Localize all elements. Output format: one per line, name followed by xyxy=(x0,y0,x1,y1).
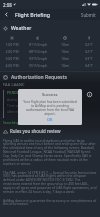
staticText: 10mi xyxy=(52,42,78,47)
staticText: 64°T xyxy=(78,63,100,68)
staticText: Flight Briefing xyxy=(15,11,51,18)
staticText: Flying UAS in and/or round stadiums and … xyxy=(3,138,97,166)
staticText: Authorization Requests xyxy=(11,74,67,81)
staticText: The FAA, under 14 CFR § 99.7 — Special S… xyxy=(3,170,97,194)
staticText: 10mi xyxy=(52,63,78,68)
staticText: 62°T xyxy=(78,42,100,47)
staticText: 1:00 PM xyxy=(0,42,24,47)
staticText: Authorization pending for xyxy=(7,97,48,101)
staticText: Time submitted: 2:08 PM xyxy=(7,103,46,107)
staticText: 63°T xyxy=(78,56,100,61)
button[interactable]: OK xyxy=(44,116,56,122)
staticText: Submit xyxy=(81,12,96,18)
staticText: 88°F/2mph xyxy=(24,49,52,54)
staticText: Success xyxy=(42,92,58,98)
staticText: 3:00 PM xyxy=(0,56,24,61)
staticText: 81°F/2mph xyxy=(24,42,52,47)
staticText: Weather xyxy=(11,25,32,32)
staticText: 95°F/2mph xyxy=(24,63,52,68)
staticText: PENDING xyxy=(7,90,25,95)
staticText: OK xyxy=(47,117,53,121)
staticText: AirMap does not guarantee the accuracy o… xyxy=(3,198,97,206)
staticText: 4:00 PM xyxy=(0,63,24,68)
staticText: 2:08 xyxy=(3,2,12,8)
staticText: 62°T xyxy=(78,49,100,54)
button[interactable]: Submit xyxy=(79,10,98,20)
button[interactable]: Back xyxy=(1,9,12,20)
staticText: 10mi xyxy=(52,56,78,61)
staticText: after review by the FAA xyxy=(7,109,43,113)
staticText: 2:00 PM xyxy=(0,49,24,54)
staticText: Your flight plan has been submitted to A… xyxy=(22,100,78,116)
staticText: Searching... xyxy=(3,120,22,125)
button[interactable]: Info xyxy=(86,91,93,98)
staticText: FAA LAANC xyxy=(3,82,25,87)
staticText: 10mi xyxy=(52,49,78,54)
staticText: 93°F/2mph xyxy=(24,56,52,61)
staticText: Rules you should review xyxy=(10,128,61,134)
